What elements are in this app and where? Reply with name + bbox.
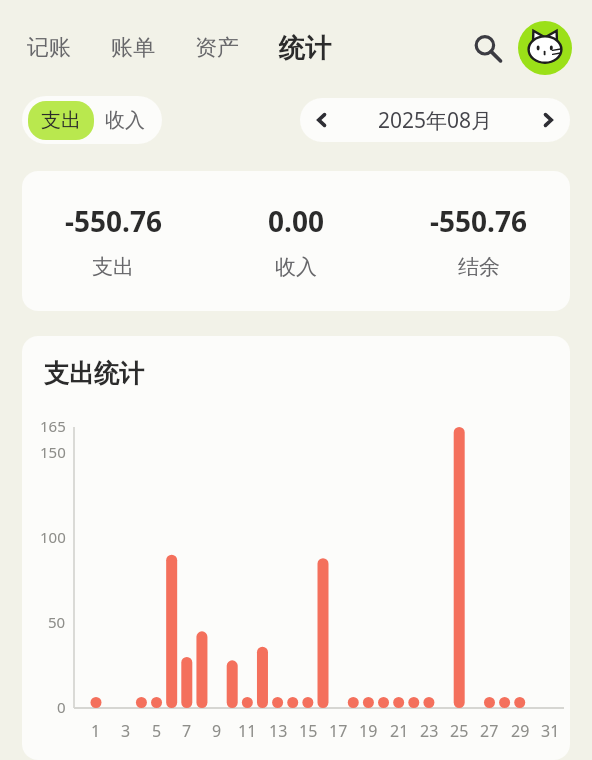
staticText: 支出 — [92, 254, 134, 280]
staticText: 记账 — [27, 34, 71, 62]
staticText: 13 — [269, 720, 288, 742]
staticText: 收入 — [275, 254, 317, 280]
button[interactable]: -550.76 — [22, 171, 570, 311]
staticText: 150 — [40, 442, 66, 462]
staticText: -550.76 — [430, 202, 527, 240]
staticText: 支出 — [41, 108, 81, 133]
staticText: 23 — [420, 720, 439, 742]
staticText: 3 — [121, 720, 131, 742]
staticText: 11 — [238, 720, 257, 742]
staticText: 收入 — [105, 108, 145, 133]
staticText: 17 — [329, 720, 348, 742]
staticText: 支出统计 — [44, 358, 144, 389]
staticText: 0 — [57, 697, 66, 717]
button[interactable]: 收入 — [94, 101, 156, 140]
staticText: 7 — [182, 720, 192, 742]
button[interactable]: 统计 — [276, 26, 334, 71]
button[interactable]: 支出 — [28, 101, 94, 140]
staticText: 结余 — [458, 254, 500, 280]
staticText: 19 — [359, 720, 378, 742]
staticText: 21 — [390, 720, 409, 742]
staticText: 资产 — [195, 34, 239, 62]
staticText: 165 — [40, 416, 66, 436]
staticText: 100 — [40, 527, 66, 547]
button[interactable]: Profile — [518, 21, 572, 75]
button[interactable]: Search — [464, 25, 510, 71]
button[interactable]: 资产 — [192, 28, 242, 68]
staticText: 27 — [480, 720, 499, 742]
button[interactable]: 记账 — [24, 28, 74, 68]
staticText: 5 — [152, 720, 162, 742]
staticText: 9 — [212, 720, 222, 742]
staticText: 25 — [450, 720, 469, 742]
button[interactable]: Next month — [526, 98, 570, 142]
staticText: 31 — [541, 720, 560, 742]
button[interactable]: Previous month — [300, 98, 344, 142]
staticText: -550.76 — [65, 202, 162, 240]
staticText: 0.00 — [268, 202, 324, 240]
staticText: 账单 — [111, 34, 155, 62]
button[interactable]: 账单 — [108, 28, 158, 68]
staticText: 统计 — [279, 32, 331, 65]
staticText: 1 — [91, 720, 101, 742]
staticText: 50 — [48, 612, 66, 632]
staticText: 29 — [511, 720, 530, 742]
staticText: 15 — [299, 720, 318, 742]
staticText: 2025年08月 — [378, 106, 493, 135]
